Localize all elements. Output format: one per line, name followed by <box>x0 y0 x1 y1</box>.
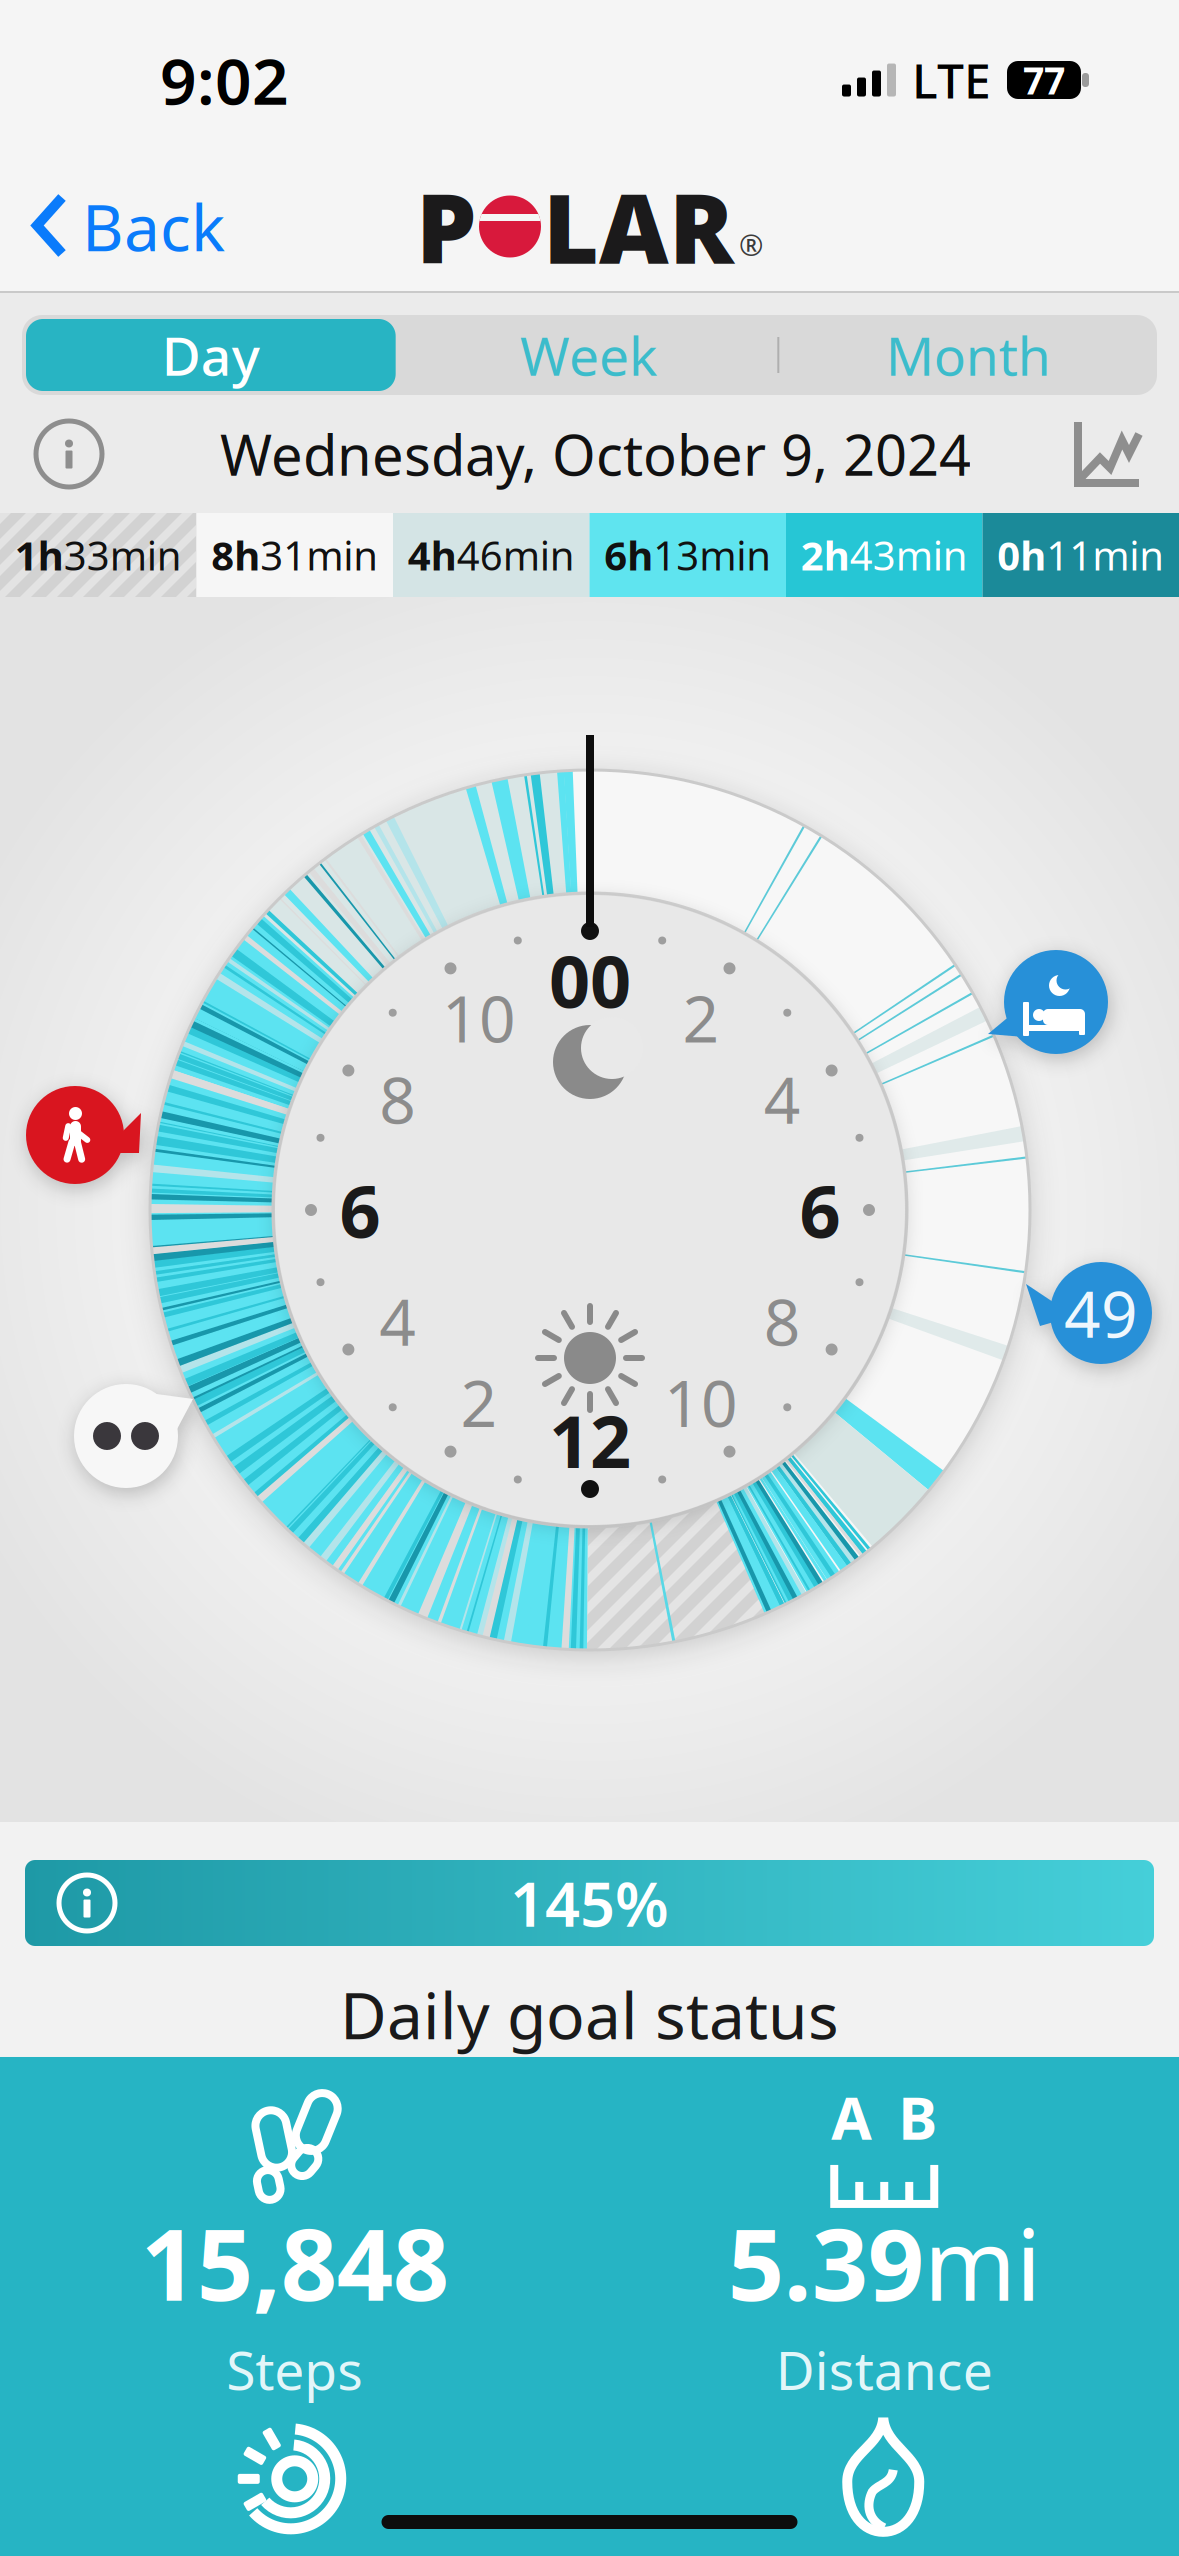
button[interactable]: Information <box>0 401 122 507</box>
button[interactable]: Inactivity stamps <box>1022 1254 1152 1372</box>
staticText: Wednesday, October 9, 2024 <box>220 417 971 491</box>
button[interactable]: Steps <box>23 1077 151 1193</box>
staticText: LTE <box>912 48 991 112</box>
staticText: Steps <box>226 2334 363 2405</box>
staticText: 12 <box>549 1392 631 1488</box>
staticText: B <box>898 2078 937 2156</box>
staticText: 46min <box>457 528 575 581</box>
staticText: 2 <box>460 1360 497 1445</box>
staticText: 4 <box>764 1056 801 1141</box>
button[interactable]: Day <box>22 315 400 395</box>
staticText: Distance <box>776 2334 993 2405</box>
button[interactable]: More <box>71 1371 205 1493</box>
staticText: 8 <box>764 1278 801 1363</box>
staticText: 6h <box>604 528 653 581</box>
staticText: 13min <box>653 528 771 581</box>
staticText: 15,848 <box>141 2197 449 2328</box>
staticText: P <box>416 163 477 290</box>
button[interactable]: 15,848 <box>0 2093 589 2405</box>
button[interactable]: Week <box>400 315 777 395</box>
staticText: 77 <box>1023 55 1065 105</box>
button[interactable]: Sleep <box>978 942 1110 1062</box>
staticText: Back <box>82 184 225 269</box>
staticText: 10 <box>442 975 516 1060</box>
button[interactable]: Month <box>779 315 1157 395</box>
staticText: A <box>831 2078 872 2156</box>
staticText: 1h <box>15 528 64 581</box>
staticText: 33min <box>64 528 182 581</box>
button[interactable]: A <box>589 2093 1179 2405</box>
staticText: Day <box>162 320 260 390</box>
staticText: 145% <box>510 1862 669 1944</box>
staticText: 2 <box>682 975 719 1060</box>
staticText: ® <box>739 225 763 264</box>
staticText: 6 <box>339 1162 380 1258</box>
button[interactable]: Charts <box>1069 399 1179 509</box>
button[interactable]: Active time <box>0 2415 589 2539</box>
staticText: Daily goal status <box>340 1972 839 2057</box>
staticText: 2h <box>801 528 850 581</box>
staticText: 8h <box>211 528 260 581</box>
staticText: 6 <box>799 1162 840 1258</box>
staticText: 49 <box>1064 1270 1138 1355</box>
staticText: 8 <box>379 1056 416 1141</box>
staticText: 4 <box>379 1278 416 1363</box>
staticText: 4h <box>408 528 457 581</box>
button[interactable]: Calories <box>589 2415 1179 2539</box>
staticText: Week <box>520 320 657 390</box>
staticText: 10 <box>664 1360 738 1445</box>
staticText: 0h <box>997 528 1046 581</box>
staticText: 11min <box>1046 528 1164 581</box>
staticText: LAR <box>543 163 734 290</box>
staticText: mi <box>924 2197 1041 2328</box>
staticText: Month <box>886 320 1051 390</box>
staticText: 00 <box>549 932 631 1028</box>
staticText: 9:02 <box>160 37 289 122</box>
staticText: 43min <box>850 528 968 581</box>
button[interactable]: Back <box>0 166 225 287</box>
staticText: 31min <box>260 528 378 581</box>
staticText: 5.39 <box>728 2197 924 2328</box>
